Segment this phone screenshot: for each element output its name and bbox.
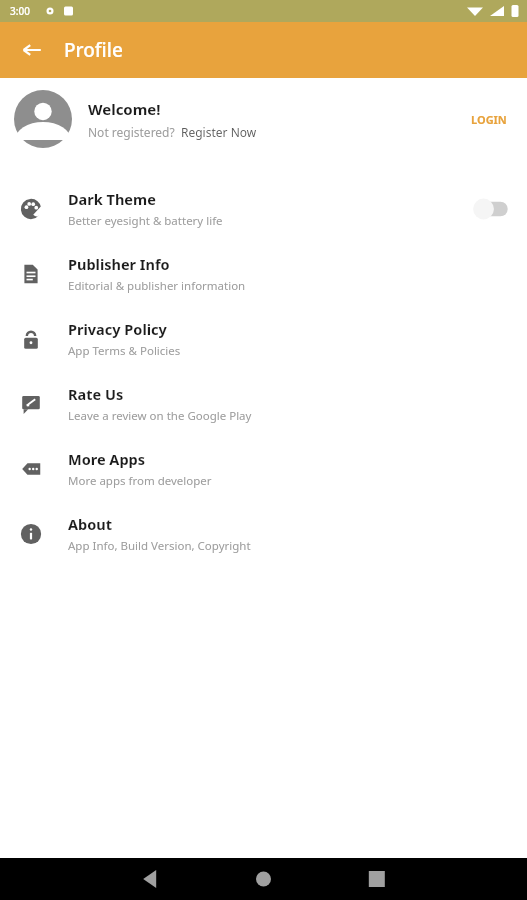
staticText: Rate Us xyxy=(68,384,124,404)
button[interactable]: Rate Us xyxy=(0,371,527,436)
staticText: Editorial & publisher information xyxy=(68,278,246,294)
staticText: Better eyesight & battery life xyxy=(68,213,223,229)
staticText: More apps from developer xyxy=(68,473,212,489)
button[interactable]: Register Now xyxy=(181,124,257,140)
button[interactable]: More Apps xyxy=(0,436,527,501)
button[interactable]: LOGIN xyxy=(465,108,513,131)
staticText: Welcome! xyxy=(88,99,161,119)
staticText: Leave a review on the Google Play xyxy=(68,408,252,424)
button[interactable]: Publisher Info xyxy=(0,241,527,306)
staticText: App Info, Build Version, Copyright xyxy=(68,538,251,554)
staticText: Privacy Policy xyxy=(68,319,167,339)
staticText: Not registered? xyxy=(88,124,175,140)
staticText: About xyxy=(68,514,112,534)
staticText: App Terms & Policies xyxy=(68,343,181,359)
button[interactable]: About xyxy=(0,501,527,566)
button[interactable]: Welcome! xyxy=(0,78,527,160)
staticText: LOGIN xyxy=(471,112,507,127)
button[interactable]: Privacy Policy xyxy=(0,306,527,371)
staticText: Publisher Info xyxy=(68,254,170,274)
staticText: More Apps xyxy=(68,449,145,469)
staticText: Dark Theme xyxy=(68,189,156,209)
button[interactable]: Back xyxy=(14,32,50,68)
button[interactable]: Dark Theme xyxy=(0,176,527,241)
staticText: Profile xyxy=(64,37,123,63)
button[interactable]: Dark Theme toggle xyxy=(469,196,513,222)
staticText: 3:00 xyxy=(10,4,30,18)
